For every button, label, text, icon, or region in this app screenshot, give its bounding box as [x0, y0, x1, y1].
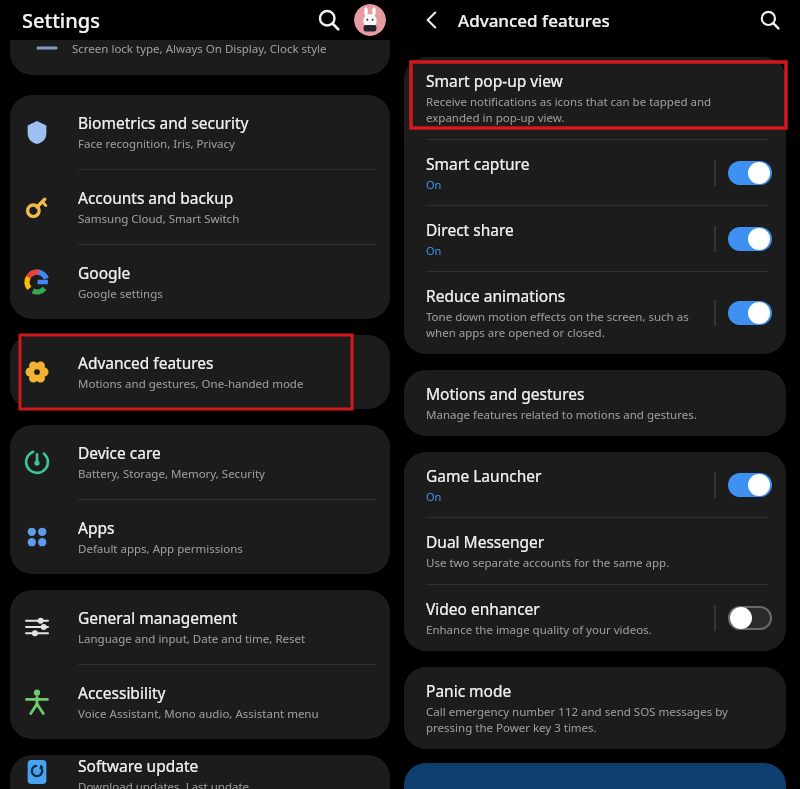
- staticText: Enhance the image quality of your videos…: [426, 622, 652, 638]
- staticText: Language and input, Date and time, Reset: [78, 631, 306, 647]
- button[interactable]: Smart pop-up view: [404, 57, 786, 139]
- button[interactable]: Accessibility: [10, 665, 390, 739]
- button[interactable]: Accounts and backup: [10, 170, 390, 244]
- staticText: Dual Messenger: [426, 531, 545, 552]
- staticText: Voice Assistant, Mono audio, Assistant m…: [78, 706, 319, 722]
- staticText: Manage features related to motions and g…: [426, 407, 697, 423]
- button[interactable]: Direct share on: [728, 227, 772, 251]
- staticText: Advanced features: [458, 9, 610, 32]
- staticText: Call emergency number 112 and send SOS m…: [426, 704, 728, 736]
- button[interactable]: Search: [312, 3, 346, 37]
- staticText: On: [426, 177, 442, 192]
- staticText: Reduce animations: [426, 285, 566, 306]
- staticText: Advanced features: [78, 352, 214, 373]
- button[interactable]: Dual Messenger: [404, 518, 786, 584]
- button[interactable]: Reduce animations: [404, 272, 786, 354]
- staticText: Software update: [78, 755, 199, 776]
- staticText: Tone down motion effects on the screen, …: [426, 309, 689, 341]
- staticText: Motions and gestures: [426, 383, 585, 404]
- button[interactable]: Direct share: [404, 206, 786, 271]
- button[interactable]: Back: [418, 6, 446, 34]
- staticText: Direct share: [426, 219, 514, 240]
- staticText: Google settings: [78, 286, 163, 302]
- staticText: Google: [78, 262, 131, 283]
- button[interactable]: Game Launcher: [404, 452, 786, 517]
- button[interactable]: Video enhancer off: [728, 606, 772, 630]
- button[interactable]: Smart capture on: [728, 161, 772, 185]
- staticText: General management: [78, 607, 238, 628]
- staticText: Download updates, Last update: [78, 779, 250, 789]
- button[interactable]: Panic mode: [404, 667, 786, 749]
- staticText: Face recognition, Iris, Privacy: [78, 136, 235, 152]
- staticText: Game Launcher: [426, 465, 542, 486]
- staticText: Accounts and backup: [78, 187, 234, 208]
- button[interactable]: Motions and gestures: [404, 370, 786, 436]
- button[interactable]: Software update: [10, 755, 390, 789]
- button[interactable]: [404, 763, 786, 789]
- button[interactable]: Apps: [10, 500, 390, 574]
- button[interactable]: General management: [10, 590, 390, 664]
- staticText: Device care: [78, 442, 161, 463]
- staticText: Panic mode: [426, 680, 512, 701]
- staticText: Motions and gestures, One-handed mode: [78, 376, 304, 392]
- button[interactable]: Profile: [354, 4, 386, 36]
- button[interactable]: Smart capture: [404, 140, 786, 205]
- button[interactable]: Google: [10, 245, 390, 319]
- button[interactable]: Biometrics and security: [10, 95, 390, 169]
- staticText: Apps: [78, 517, 115, 538]
- staticText: Settings: [22, 7, 100, 34]
- button[interactable]: Video enhancer: [404, 585, 786, 651]
- staticText: Receive notifications as icons that can …: [426, 94, 712, 126]
- staticText: Samsung Cloud, Smart Switch: [78, 211, 240, 227]
- staticText: Use two separate accounts for the same a…: [426, 555, 670, 571]
- staticText: On: [426, 243, 442, 258]
- staticText: Biometrics and security: [78, 112, 249, 133]
- button[interactable]: Screen lock type, Always On Display, Clo…: [10, 40, 390, 75]
- button[interactable]: Advanced features: [10, 335, 390, 409]
- staticText: On: [426, 489, 442, 504]
- staticText: Battery, Storage, Memory, Security: [78, 466, 265, 482]
- staticText: Screen lock type, Always On Display, Clo…: [72, 41, 327, 57]
- staticText: Smart pop-up view: [426, 70, 563, 91]
- staticText: Default apps, App permissions: [78, 541, 243, 557]
- button[interactable]: Device care: [10, 425, 390, 499]
- button[interactable]: Reduce animations on: [728, 301, 772, 325]
- staticText: Smart capture: [426, 153, 530, 174]
- button[interactable]: Search: [754, 4, 786, 36]
- button[interactable]: Game Launcher on: [728, 473, 772, 497]
- staticText: Accessibility: [78, 682, 166, 703]
- staticText: Video enhancer: [426, 598, 540, 619]
